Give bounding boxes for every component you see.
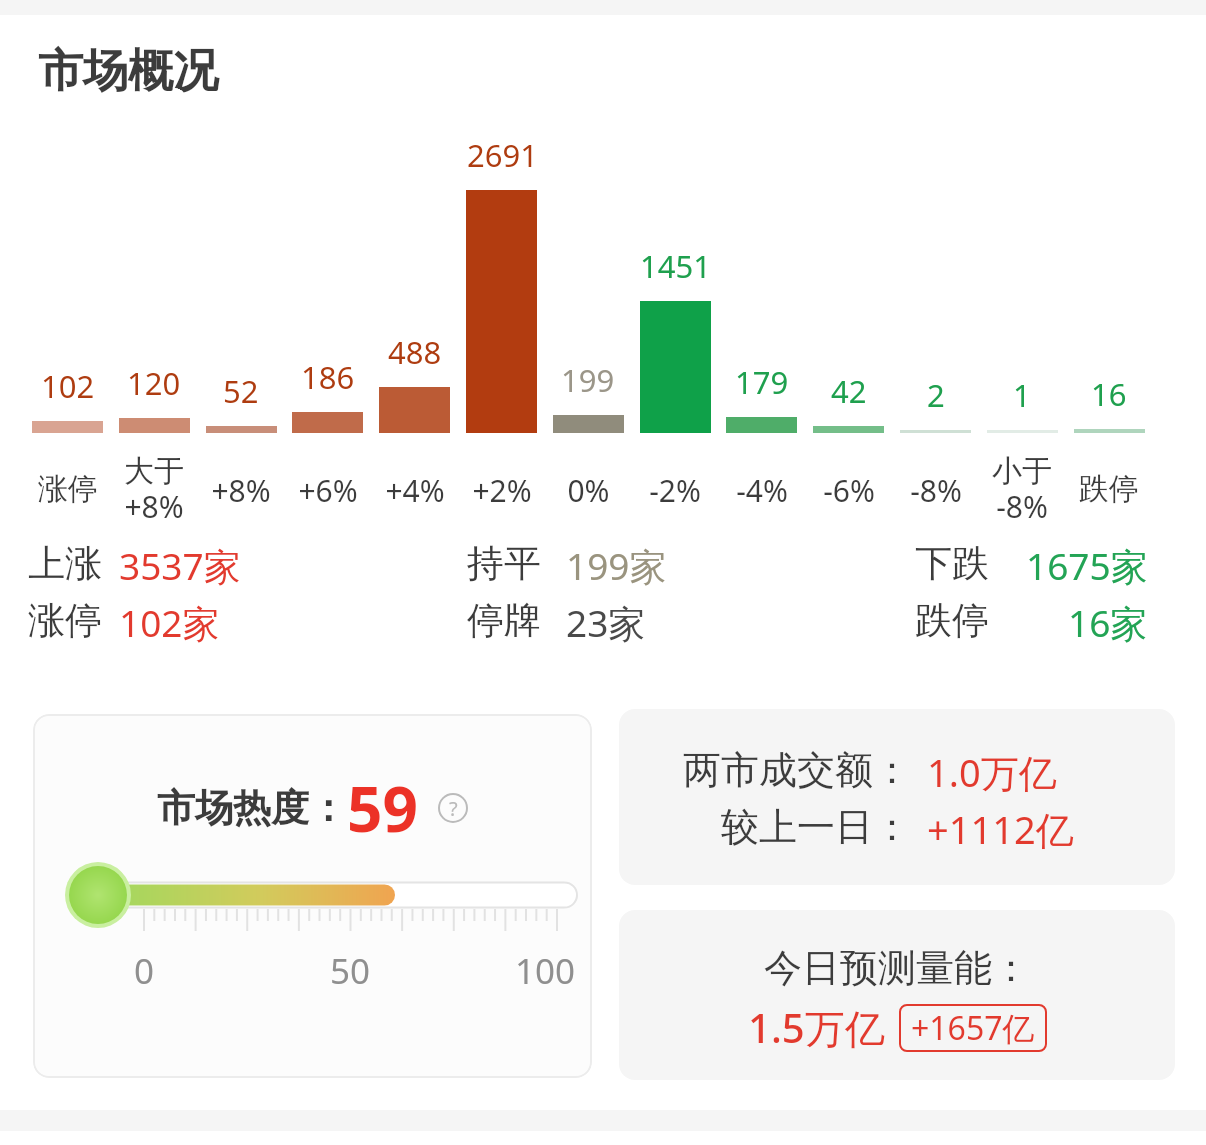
staticText: -2% <box>649 470 701 511</box>
staticText: 大于 +8% <box>124 452 184 527</box>
staticText: 16家 <box>1068 597 1148 648</box>
staticText: -8% <box>910 470 962 511</box>
staticText: 50 <box>330 947 371 995</box>
staticText: 市场概况 <box>38 43 218 100</box>
staticText: 市场热度： <box>157 784 347 832</box>
staticText: 下跌 <box>915 540 989 587</box>
button[interactable]: 市场热度： <box>33 714 592 1078</box>
staticText: +1112亿 <box>927 803 1074 855</box>
staticText: 102家 <box>119 597 220 648</box>
staticText: 2 <box>927 374 945 416</box>
staticText: 1.0万亿 <box>927 746 1057 798</box>
staticText: 较上一日： <box>721 803 911 851</box>
staticText: 今日预测量能： <box>764 944 1030 992</box>
staticText: 199 <box>561 359 615 401</box>
staticText: 1675家 <box>1026 540 1148 591</box>
button[interactable]: 今日预测量能： <box>619 910 1175 1080</box>
staticText: -4% <box>736 470 788 511</box>
staticText: 102 <box>41 365 95 407</box>
staticText: 1.5万亿 <box>748 1000 885 1055</box>
button[interactable]: ? <box>438 793 468 823</box>
staticText: 23家 <box>566 597 646 648</box>
staticText: +4% <box>385 470 445 511</box>
staticText: 120 <box>127 362 181 404</box>
staticText: 3537家 <box>119 540 241 591</box>
staticText: 100 <box>515 947 576 995</box>
staticText: 1451 <box>640 245 711 287</box>
staticText: 持平 <box>467 540 541 587</box>
staticText: +1657亿 <box>911 1006 1035 1050</box>
staticText: 0 <box>134 947 155 995</box>
staticText: 0% <box>567 470 610 511</box>
staticText: 199家 <box>566 540 667 591</box>
staticText: +2% <box>472 470 532 511</box>
staticText: 179 <box>735 361 789 403</box>
staticText: 42 <box>831 370 867 412</box>
staticText: 涨停 <box>28 597 102 644</box>
staticText: -6% <box>823 470 875 511</box>
staticText: 小于 -8% <box>992 452 1052 527</box>
staticText: 59 <box>347 766 418 850</box>
button[interactable]: 两市成交额： <box>619 709 1175 885</box>
staticText: 上涨 <box>28 540 102 587</box>
staticText: 1 <box>1013 374 1031 416</box>
staticText: 跌停 <box>915 597 989 644</box>
staticText: ? <box>449 795 458 822</box>
staticText: +6% <box>298 470 358 511</box>
staticText: 488 <box>388 331 442 373</box>
staticText: 52 <box>223 370 259 412</box>
staticText: 涨停 <box>38 470 98 508</box>
staticText: 2691 <box>467 134 538 176</box>
staticText: 跌停 <box>1079 470 1139 508</box>
staticText: +8% <box>211 470 271 511</box>
staticText: 16 <box>1091 373 1127 415</box>
staticText: 停牌 <box>467 597 541 644</box>
staticText: 186 <box>301 356 355 398</box>
staticText: 两市成交额： <box>683 746 911 794</box>
